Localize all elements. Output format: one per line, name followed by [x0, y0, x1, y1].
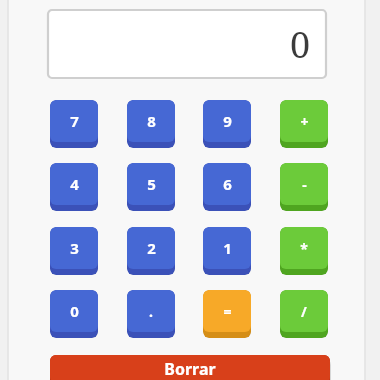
staticText: 4 — [70, 174, 79, 194]
button[interactable]: 5 — [127, 163, 175, 211]
staticText: 6 — [223, 174, 232, 194]
staticText: Borrar — [164, 358, 216, 380]
button[interactable]: Equals — [203, 290, 251, 338]
button[interactable]: Minus — [280, 163, 328, 211]
staticText: 7 — [70, 111, 79, 131]
staticText: 9 — [223, 111, 232, 131]
button[interactable]: Divide — [280, 290, 328, 338]
button[interactable]: 7 — [50, 100, 98, 148]
button[interactable]: 1 — [203, 227, 251, 275]
button[interactable]: Multiply — [280, 227, 328, 275]
button[interactable]: 3 — [50, 227, 98, 275]
staticText: = — [223, 302, 232, 321]
button[interactable]: 6 — [203, 163, 251, 211]
staticText: / — [301, 302, 307, 321]
button[interactable]: 2 — [127, 227, 175, 275]
staticText: 1 — [223, 238, 232, 258]
button[interactable]: Plus — [280, 100, 328, 148]
button[interactable]: 4 — [50, 163, 98, 211]
button[interactable]: Decimal point — [127, 290, 175, 338]
button[interactable]: 9 — [203, 100, 251, 148]
button[interactable]: 0 — [50, 290, 98, 338]
button[interactable]: 8 — [127, 100, 175, 148]
button[interactable]: Borrar — [50, 355, 330, 380]
staticText: - — [302, 175, 307, 194]
staticText: 5 — [147, 174, 156, 194]
staticText: 0 — [70, 301, 79, 321]
staticText: 8 — [147, 111, 156, 131]
button[interactable]: 0 — [48, 10, 326, 78]
staticText: 0 — [289, 20, 310, 69]
staticText: * — [300, 239, 308, 258]
staticText: 2 — [147, 238, 156, 258]
staticText: 3 — [70, 238, 79, 258]
staticText: . — [149, 302, 153, 321]
staticText: + — [300, 112, 309, 131]
